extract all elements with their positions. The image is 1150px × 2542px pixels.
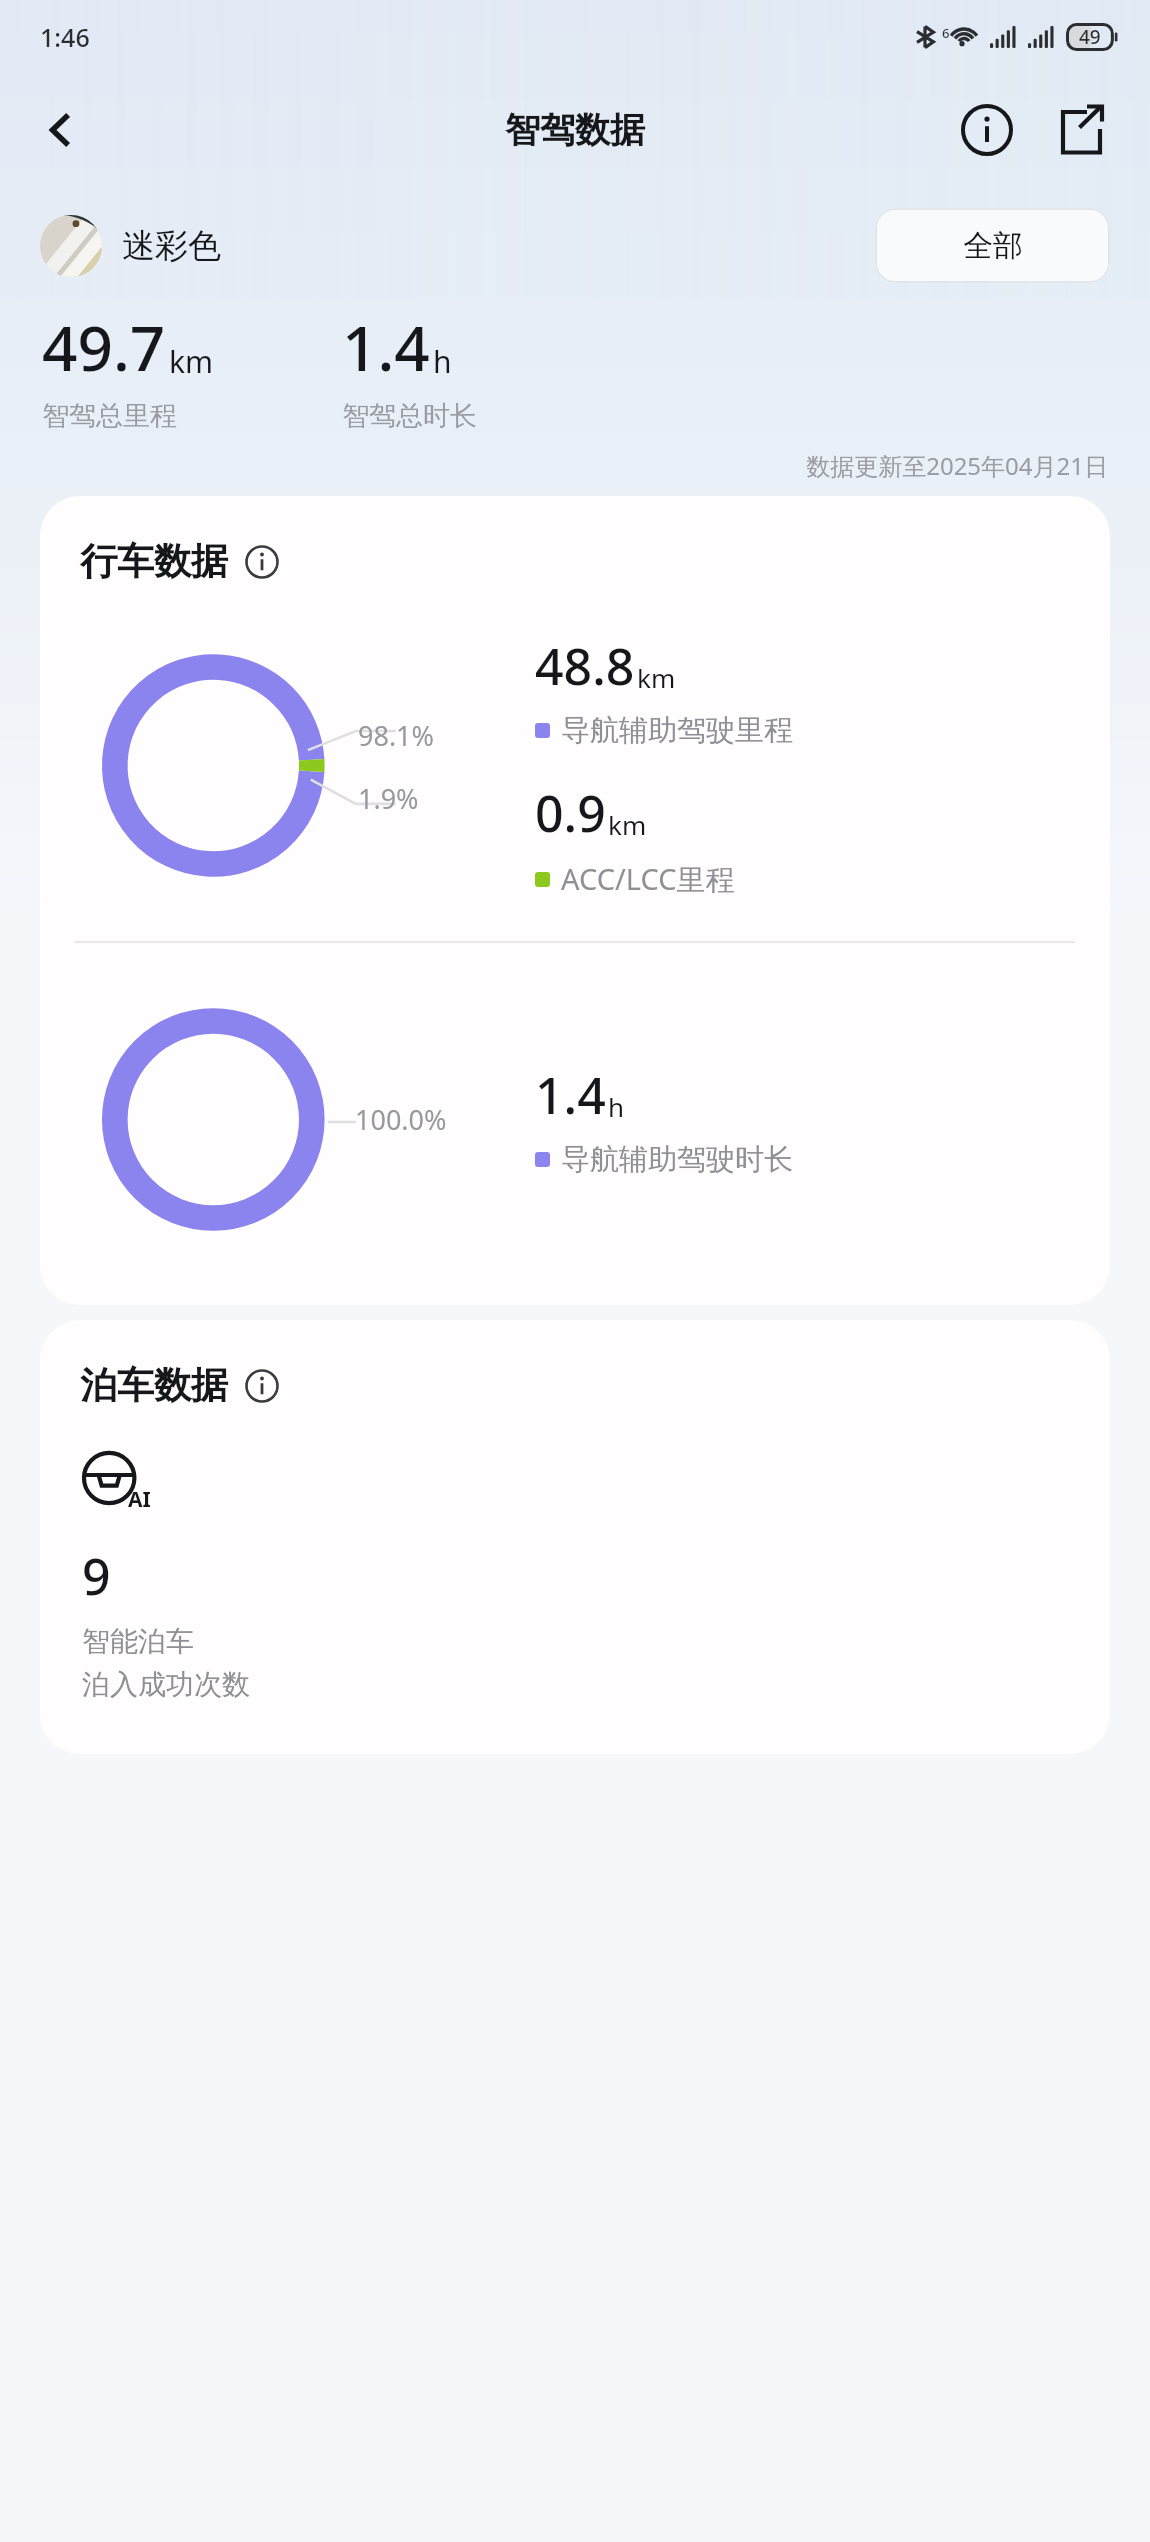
button[interactable]: Info	[948, 91, 1026, 169]
staticText: 6	[942, 24, 950, 42]
staticText: 0.9	[535, 779, 606, 847]
staticText: 全部	[963, 227, 1023, 265]
staticText: 泊车数据	[80, 1362, 228, 1409]
button[interactable]: Info	[240, 1364, 284, 1408]
button[interactable]: Share	[1042, 91, 1120, 169]
staticText: 导航辅助驾驶时长	[561, 1141, 793, 1178]
staticText: 泊入成功次数	[82, 1667, 250, 1702]
staticText: 100.0%	[355, 1101, 447, 1138]
staticText: km	[637, 660, 676, 695]
staticText: 49.7	[42, 305, 166, 389]
staticText: 智驾总里程	[42, 399, 177, 433]
staticText: 迷彩色	[122, 225, 221, 267]
staticText: 行车数据	[80, 538, 228, 585]
staticText: h	[608, 1089, 625, 1124]
staticText: 1.9%	[358, 780, 419, 817]
staticText: 1.4	[342, 305, 430, 389]
staticText: 智驾总时长	[342, 399, 477, 433]
staticText: ACC/LCC里程	[561, 859, 735, 899]
staticText: 智能泊车	[82, 1624, 194, 1659]
staticText: 49	[1079, 24, 1101, 50]
staticText: h	[433, 341, 452, 382]
staticText: AI	[128, 1485, 151, 1514]
staticText: km	[608, 807, 647, 842]
staticText: 9	[82, 1542, 111, 1610]
button[interactable]: Info	[240, 540, 284, 584]
staticText: 智驾数据	[505, 108, 645, 152]
staticText: km	[169, 341, 214, 382]
staticText: 1.4	[535, 1061, 606, 1129]
staticText: 48.8	[535, 632, 635, 700]
staticText: 98.1%	[358, 717, 435, 754]
button[interactable]: Back	[22, 90, 102, 170]
staticText: 导航辅助驾驶里程	[561, 712, 793, 749]
staticText: 1:46	[40, 20, 90, 54]
staticText: 数据更新至2025年04月21日	[0, 449, 1108, 482]
button[interactable]: 全部	[875, 208, 1110, 283]
